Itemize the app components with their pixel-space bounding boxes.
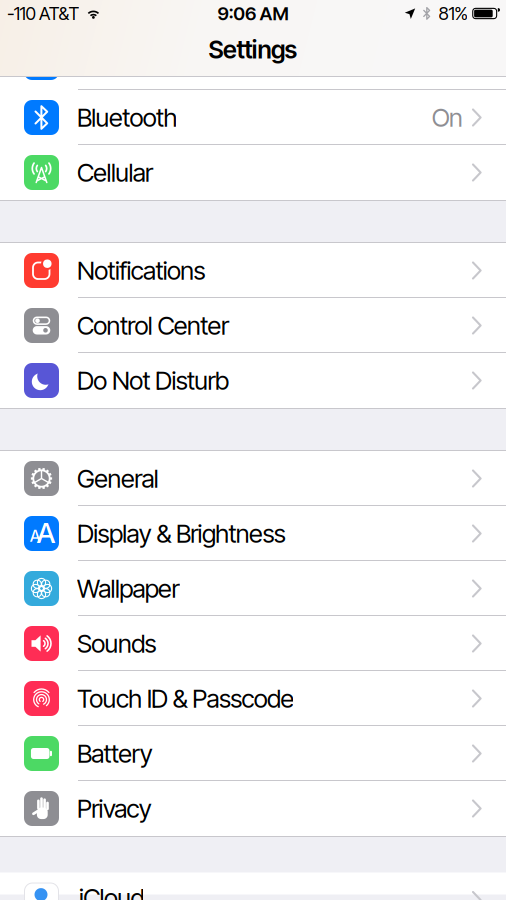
staticText: Display & Brightness — [77, 518, 286, 549]
staticText: Do Not Disturb — [77, 365, 229, 396]
staticText: General — [77, 463, 159, 494]
staticText: 9:06 AM — [218, 2, 288, 25]
button[interactable]: Control Center — [0, 298, 506, 353]
staticText: A — [30, 526, 41, 546]
button[interactable]: General — [0, 451, 506, 506]
staticText: Control Center — [77, 310, 229, 341]
staticText: Wallpaper — [77, 573, 179, 604]
staticText: iCloud — [79, 882, 144, 900]
button[interactable]: Cellular — [0, 145, 506, 200]
staticText: On — [432, 102, 463, 133]
staticText: 81% — [439, 3, 468, 24]
button[interactable]: Do Not Disturb — [0, 353, 506, 408]
button[interactable]: Wi-Fi — [0, 35, 506, 90]
staticText: Touch ID & Passcode — [77, 683, 294, 714]
staticText: Sounds — [77, 628, 156, 659]
staticText: Privacy — [77, 793, 152, 824]
button[interactable]: A — [0, 506, 506, 561]
staticText: Wi-Fi — [77, 47, 131, 78]
button[interactable]: Bluetooth — [0, 90, 506, 145]
button[interactable]: Sounds — [0, 616, 506, 671]
button[interactable]: Touch ID & Passcode — [0, 671, 506, 726]
staticText: Notifications — [77, 255, 206, 286]
button[interactable]: Wallpaper — [0, 561, 506, 616]
button[interactable]: iCloud — [0, 879, 506, 900]
button[interactable]: Notifications — [0, 243, 506, 298]
button[interactable]: Privacy — [0, 781, 506, 836]
staticText: Bluetooth — [77, 102, 177, 133]
staticText: HomeNet — [360, 47, 463, 78]
staticText: Battery — [77, 738, 153, 769]
staticText: Settings — [208, 35, 298, 64]
staticText: A — [36, 516, 55, 550]
staticText: -110 AT&T — [7, 3, 79, 24]
staticText: Cellular — [77, 157, 153, 188]
button[interactable]: Battery — [0, 726, 506, 781]
